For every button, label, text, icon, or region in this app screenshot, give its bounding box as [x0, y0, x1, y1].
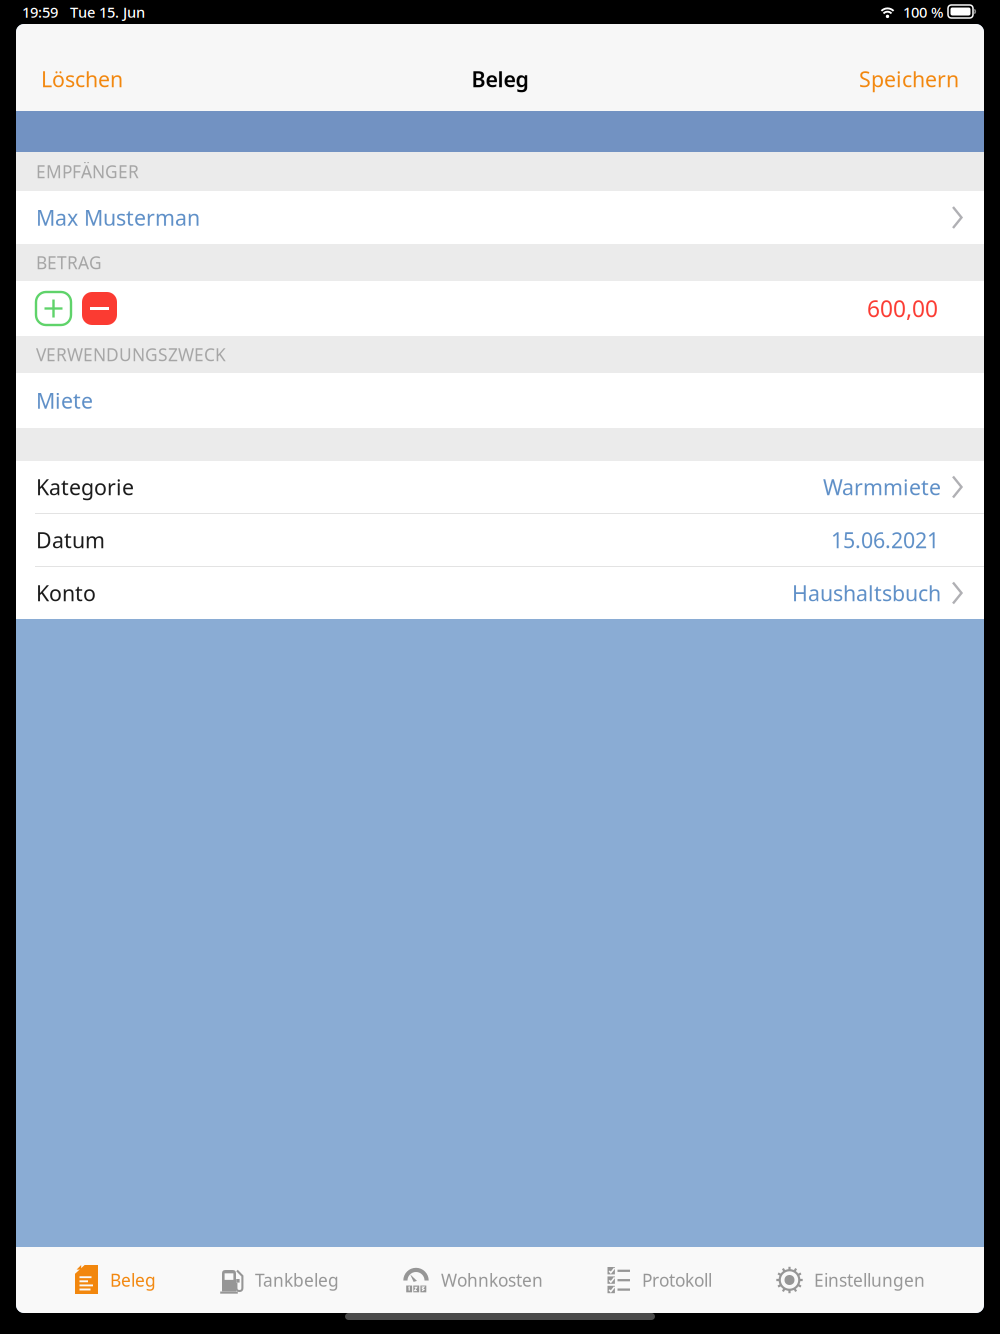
- staticText: VERWENDUNGSZWECK: [36, 343, 226, 366]
- button[interactable]: Protokoll: [601, 1247, 718, 1313]
- staticText: Warmmiete: [823, 473, 941, 501]
- staticText: Miete: [36, 386, 93, 415]
- button[interactable]: Konto: [16, 567, 984, 619]
- button[interactable]: Einstellungen: [770, 1247, 931, 1313]
- button[interactable]: Wohnkosten: [397, 1247, 549, 1313]
- staticText: BETRAG: [36, 251, 102, 274]
- staticText: Haushaltsbuch: [792, 579, 941, 607]
- button[interactable]: Löschen: [16, 56, 148, 102]
- staticText: Max Musterman: [36, 203, 200, 232]
- staticText: Einstellungen: [814, 1268, 925, 1291]
- staticText: Löschen: [41, 65, 123, 93]
- button[interactable]: Speichern: [834, 56, 984, 102]
- button[interactable]: Tankbeleg: [214, 1247, 345, 1313]
- staticText: Kategorie: [36, 473, 134, 501]
- staticText: Datum: [36, 526, 105, 554]
- staticText: Konto: [36, 579, 96, 607]
- staticText: EMPFÄNGER: [36, 160, 139, 183]
- staticText: 15.06.2021: [831, 526, 939, 554]
- button[interactable]: Beleg: [69, 1247, 162, 1313]
- button[interactable]: Kategorie: [16, 461, 984, 513]
- staticText: Beleg: [471, 65, 528, 93]
- button[interactable]: Ausgabe: [82, 292, 117, 325]
- staticText: 19:59: [22, 2, 58, 22]
- button[interactable]: Einnahme: [36, 292, 71, 325]
- staticText: Tankbeleg: [255, 1268, 339, 1291]
- staticText: Beleg: [110, 1268, 156, 1291]
- staticText: Speichern: [859, 65, 959, 93]
- staticText: Protokoll: [642, 1268, 712, 1291]
- staticText: 600,00: [867, 293, 938, 323]
- button[interactable]: Datum: [16, 514, 984, 566]
- staticText: 100 %: [903, 2, 943, 22]
- staticText: Wohnkosten: [441, 1268, 543, 1291]
- staticText: Tue 15. Jun: [70, 2, 145, 22]
- button[interactable]: Max Musterman: [16, 191, 984, 244]
